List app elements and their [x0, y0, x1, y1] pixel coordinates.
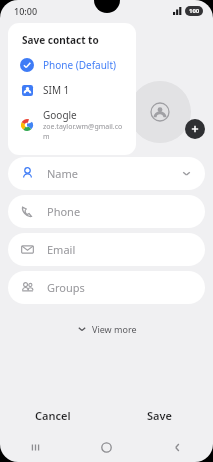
button[interactable]: Phone (Default): [8, 56, 136, 74]
staticText: Save: [147, 408, 172, 423]
staticText: Groups: [47, 280, 85, 295]
button[interactable]: Groups: [8, 271, 205, 304]
staticText: Phone: [47, 204, 81, 219]
staticText: Phone (Default): [43, 58, 117, 72]
button[interactable]: Phone: [8, 195, 205, 228]
button[interactable]: Name: [8, 157, 205, 190]
button[interactable]: Google: [8, 106, 136, 144]
staticText: Cancel: [35, 408, 71, 423]
button[interactable]: Add photo: [82, 119, 102, 139]
staticText: Google: [43, 108, 77, 122]
staticText: Email: [47, 242, 76, 257]
button[interactable]: SIM 1: [8, 81, 136, 99]
staticText: zoe.taylor.wm@gmail.com: [43, 122, 124, 142]
button[interactable]: Home: [71, 432, 142, 462]
button[interactable]: Back: [142, 432, 213, 462]
staticText: View more: [92, 323, 137, 335]
button[interactable]: Email: [8, 233, 205, 266]
button[interactable]: Cancel: [0, 398, 106, 432]
button[interactable]: View more: [69, 320, 145, 338]
staticText: 100: [189, 7, 200, 15]
button[interactable]: Save: [106, 398, 213, 432]
staticText: Name: [47, 166, 79, 181]
button[interactable]: Add photo: [185, 119, 205, 139]
staticText: SIM 1: [43, 83, 70, 97]
button[interactable]: [34, 67, 100, 143]
button[interactable]: Recent apps: [0, 432, 71, 462]
staticText: 10:00: [14, 5, 38, 17]
staticText: Save contact to: [22, 33, 99, 47]
button[interactable]: Contact photo: [129, 81, 191, 143]
